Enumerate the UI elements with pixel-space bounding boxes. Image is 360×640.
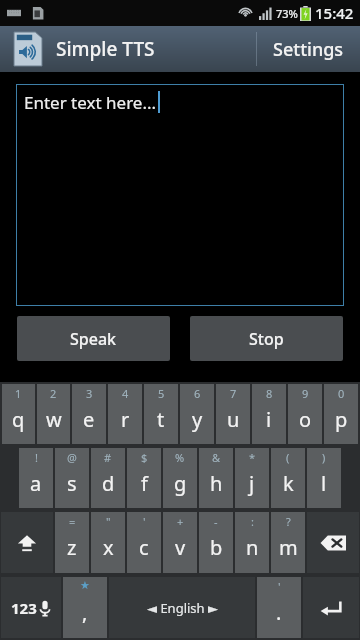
button[interactable]: 9 <box>288 384 322 444</box>
staticText: Simple TTS <box>56 36 155 62</box>
staticText: r <box>121 406 130 433</box>
button[interactable]: : <box>235 512 269 573</box>
staticText: Stop <box>249 328 284 350</box>
staticText: # <box>104 450 112 465</box>
staticText: : <box>251 514 254 529</box>
button[interactable]: Shift <box>1 512 53 573</box>
button[interactable]: 4 <box>108 384 142 444</box>
staticText: + <box>177 514 184 529</box>
staticText: 7 <box>230 386 237 401</box>
staticText: x <box>103 534 114 561</box>
button[interactable]: 5 <box>144 384 178 444</box>
staticText: a <box>30 470 42 497</box>
button[interactable]: ★ <box>63 577 107 638</box>
button[interactable]: Numbers and voice input <box>1 577 61 638</box>
staticText: 9 <box>302 386 309 401</box>
button[interactable]: ) <box>307 448 341 508</box>
staticText: w <box>46 406 62 433</box>
button[interactable]: 7 <box>216 384 250 444</box>
staticText: - <box>214 514 218 529</box>
staticText: " <box>106 514 111 529</box>
button[interactable]: 1 <box>2 384 35 444</box>
staticText: u <box>227 406 240 433</box>
staticText: ◄ English ► <box>147 599 218 617</box>
staticText: 123 <box>11 598 37 618</box>
staticText: * <box>249 450 256 465</box>
staticText: 4 <box>122 386 129 401</box>
staticText: d <box>102 470 115 497</box>
staticText: ! <box>35 450 38 465</box>
staticText: g <box>174 470 187 497</box>
staticText: t <box>157 406 165 433</box>
button[interactable]: - <box>199 512 233 573</box>
staticText: 8 <box>266 386 273 401</box>
button[interactable]: " <box>91 512 125 573</box>
staticText: s <box>67 470 77 497</box>
button[interactable]: Backspace <box>307 512 359 573</box>
staticText: k <box>283 470 294 497</box>
staticText: b <box>210 534 223 561</box>
staticText: ( <box>286 450 290 465</box>
staticText: . <box>276 599 282 626</box>
staticText: n <box>246 534 259 561</box>
button[interactable]: ! <box>19 448 53 508</box>
staticText: ) <box>322 450 326 465</box>
staticText: 73% <box>276 6 298 21</box>
button[interactable]: @ <box>55 448 89 508</box>
staticText: ' <box>278 579 281 594</box>
button[interactable]: & <box>199 448 233 508</box>
button[interactable]: 6 <box>180 384 214 444</box>
button[interactable]: Stop <box>190 316 343 361</box>
staticText: j <box>249 470 255 497</box>
staticText: e <box>83 406 95 433</box>
staticText: 5 <box>158 386 165 401</box>
staticText: ' <box>143 514 146 529</box>
button[interactable]: ? <box>271 512 305 573</box>
staticText: 3 <box>86 386 93 401</box>
staticText: i <box>266 406 272 433</box>
button[interactable]: 2 <box>37 384 70 444</box>
staticText: h <box>210 470 223 497</box>
button[interactable]: Enter text here... <box>16 84 344 306</box>
button[interactable]: Enter <box>303 577 359 638</box>
staticText: $ <box>141 450 148 465</box>
staticText: 0 <box>338 386 345 401</box>
staticText: @ <box>67 450 77 465</box>
button[interactable]: 0 <box>324 384 358 444</box>
staticText: , <box>82 599 88 626</box>
button[interactable]: % <box>163 448 197 508</box>
button[interactable]: 8 <box>252 384 286 444</box>
staticText: y <box>192 406 203 433</box>
staticText: 6 <box>194 386 201 401</box>
button[interactable]: * <box>235 448 269 508</box>
button[interactable]: ( <box>271 448 305 508</box>
staticText: p <box>335 406 348 433</box>
staticText: Enter text here... <box>24 91 157 114</box>
staticText: % <box>175 450 185 465</box>
staticText: f <box>141 470 148 497</box>
staticText: 2 <box>50 386 57 401</box>
button[interactable]: Space <box>109 577 255 638</box>
staticText: 15:42 <box>315 3 354 23</box>
staticText: q <box>12 406 25 433</box>
staticText: Speak <box>70 328 117 350</box>
staticText: ★ <box>80 579 90 592</box>
button[interactable]: ' <box>257 577 301 638</box>
staticText: c <box>139 534 149 561</box>
button[interactable]: ' <box>127 512 161 573</box>
staticText: & <box>212 450 221 465</box>
button[interactable]: Settings <box>256 26 360 72</box>
button[interactable]: # <box>91 448 125 508</box>
staticText: ? <box>286 514 291 529</box>
staticText: o <box>299 406 312 433</box>
button[interactable]: = <box>55 512 89 573</box>
staticText: Settings <box>273 37 344 62</box>
staticText: v <box>175 534 186 561</box>
staticText: m <box>279 534 298 561</box>
button[interactable]: Speak <box>17 316 170 361</box>
staticText: l <box>321 470 327 497</box>
button[interactable]: + <box>163 512 197 573</box>
button[interactable]: 3 <box>72 384 106 444</box>
staticText: z <box>67 534 77 561</box>
button[interactable]: $ <box>127 448 161 508</box>
